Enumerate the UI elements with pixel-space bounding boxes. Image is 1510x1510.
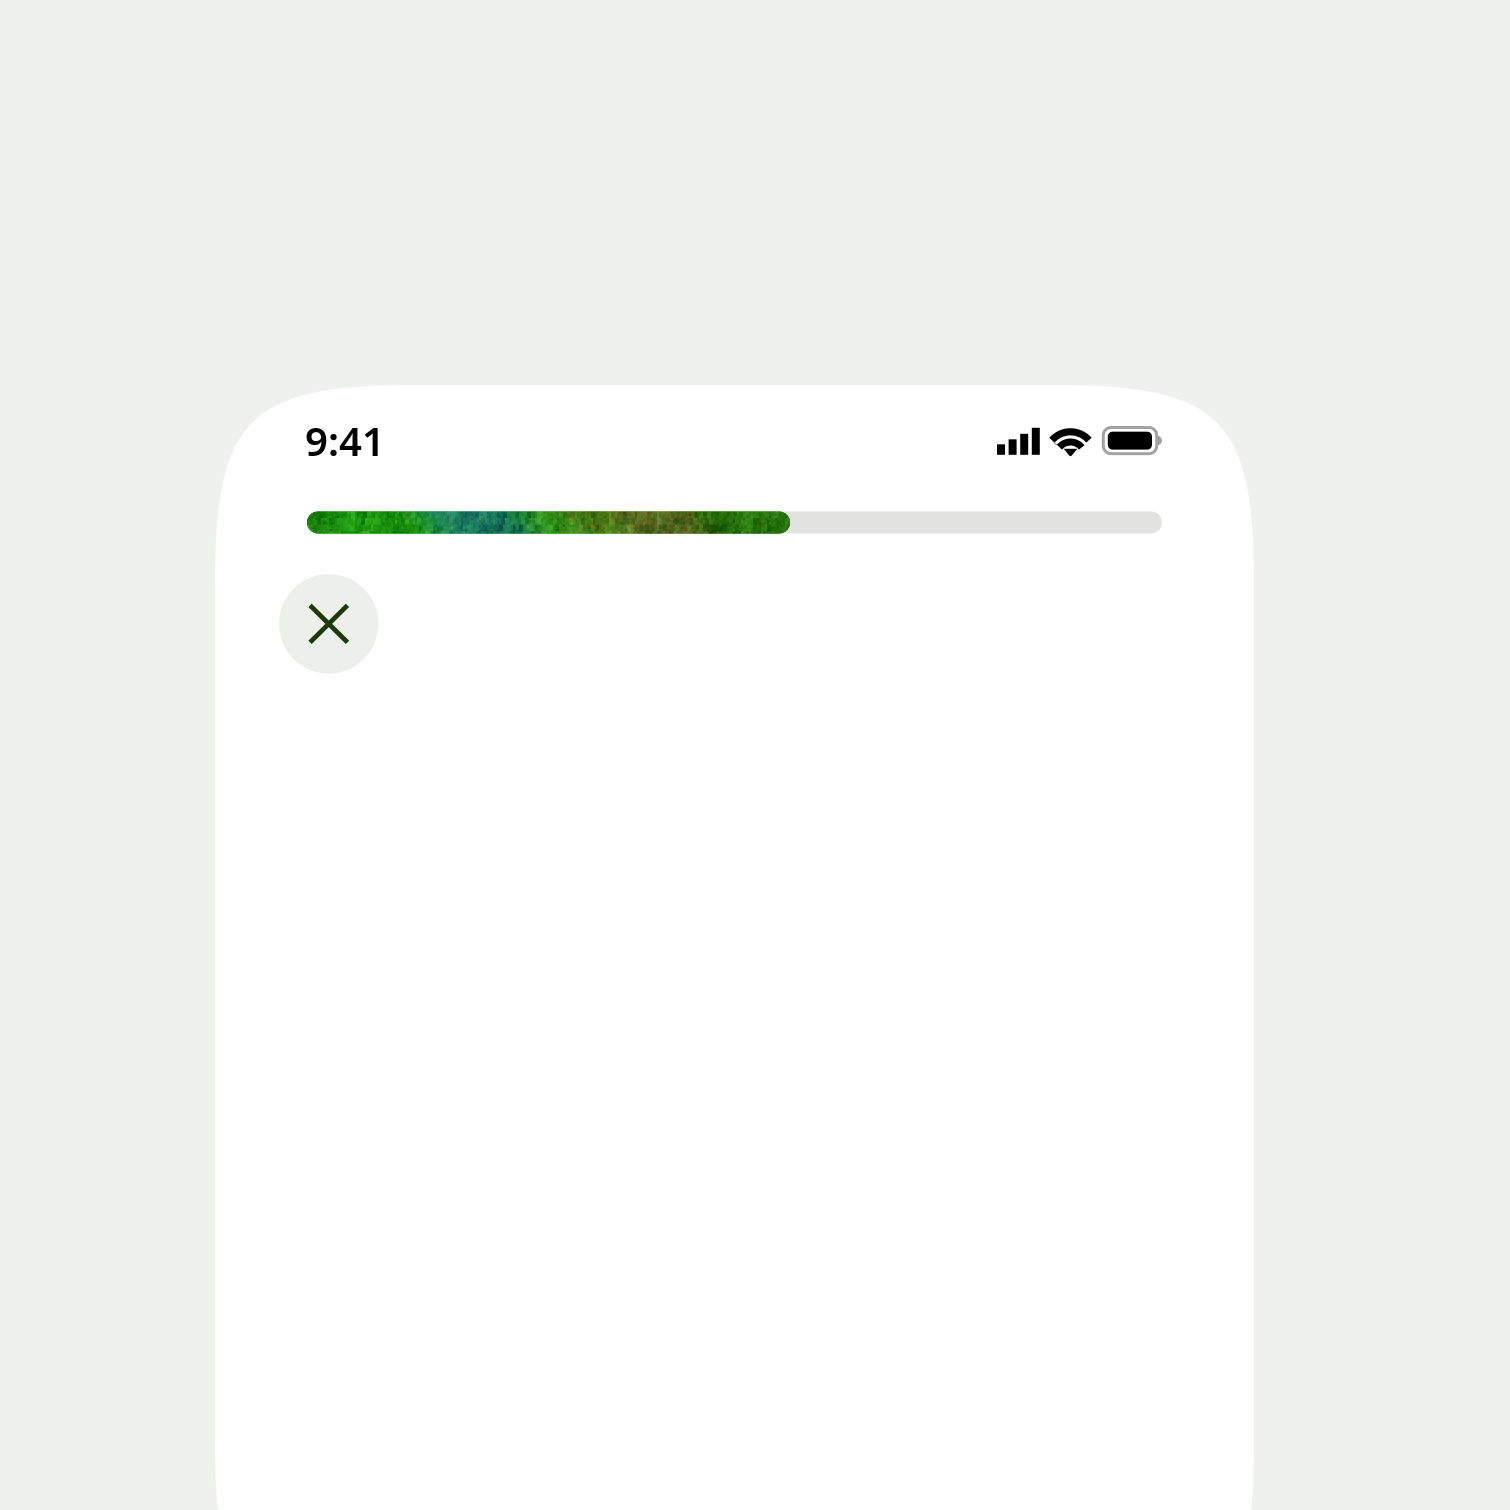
button[interactable]: Close bbox=[279, 574, 378, 674]
staticText: 9:41 bbox=[305, 414, 385, 467]
